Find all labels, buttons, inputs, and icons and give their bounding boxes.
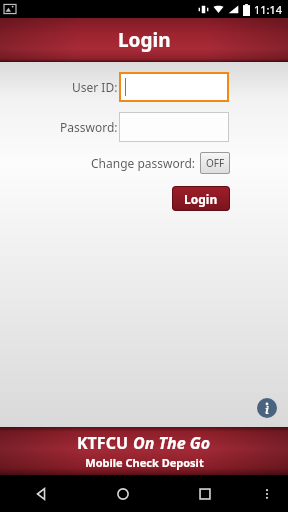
- staticText: OFF: [206, 156, 225, 170]
- staticText: KTFCU: [77, 432, 133, 454]
- button[interactable]: Login: [172, 186, 230, 211]
- staticText: 11:14: [254, 2, 283, 17]
- button[interactable]: Back: [0, 475, 82, 512]
- button[interactable]: More options: [246, 475, 288, 512]
- staticText: User ID:: [72, 79, 118, 95]
- staticText: Change password:: [91, 155, 196, 171]
- staticText: i: [265, 402, 269, 417]
- button[interactable]: [119, 112, 229, 142]
- staticText: Login: [184, 191, 218, 207]
- staticText: Password:: [60, 119, 118, 135]
- button[interactable]: [119, 72, 229, 102]
- staticText: Login: [118, 27, 171, 53]
- button[interactable]: Recent apps: [164, 475, 246, 512]
- button[interactable]: Home: [82, 475, 164, 512]
- staticText: On The Go: [133, 432, 211, 454]
- staticText: Mobile Check Deposit: [85, 455, 204, 470]
- button[interactable]: OFF: [200, 152, 230, 174]
- button[interactable]: Information: [257, 398, 277, 418]
